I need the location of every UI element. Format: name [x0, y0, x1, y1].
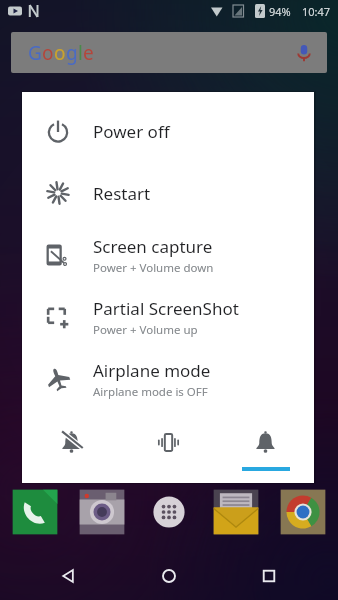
button[interactable]: Airplane mode: [22, 348, 314, 410]
staticText: Power + Volume down: [93, 260, 214, 276]
staticText: Airplane mode is OFF: [93, 384, 208, 400]
staticText: e: [83, 40, 94, 66]
button[interactable]: Back: [38, 552, 100, 600]
button[interactable]: Home: [138, 552, 200, 600]
button[interactable]: Restart: [22, 162, 314, 224]
staticText: G: [28, 40, 42, 66]
button[interactable]: Power off: [22, 100, 314, 162]
staticText: Power + Volume up: [93, 322, 198, 338]
staticText: Screen capture: [93, 235, 213, 258]
button[interactable]: Chrome: [277, 486, 329, 538]
staticText: o: [42, 40, 54, 66]
staticText: 10:47: [302, 4, 331, 19]
button[interactable]: Email: [210, 486, 262, 538]
button[interactable]: Ring mode: [217, 423, 314, 473]
button[interactable]: All apps: [143, 486, 195, 538]
staticText: l: [78, 40, 83, 66]
button[interactable]: Partial ScreenShot: [22, 286, 314, 348]
button[interactable]: Camera: [76, 486, 128, 538]
button[interactable]: G: [11, 32, 327, 73]
staticText: Restart: [93, 182, 151, 205]
staticText: Airplane mode: [93, 359, 211, 382]
staticText: Partial ScreenShot: [93, 297, 239, 320]
staticText: Power off: [93, 120, 170, 143]
staticText: 94%: [269, 4, 291, 19]
staticText: o: [54, 40, 66, 66]
button[interactable]: Screen capture: [22, 224, 314, 286]
button[interactable]: Phone: [9, 486, 61, 538]
button[interactable]: Recents: [238, 552, 300, 600]
staticText: g: [66, 40, 78, 66]
button[interactable]: Voice search: [295, 44, 313, 62]
button[interactable]: Vibrate mode: [120, 423, 217, 473]
button[interactable]: Silent mode: [22, 423, 120, 473]
